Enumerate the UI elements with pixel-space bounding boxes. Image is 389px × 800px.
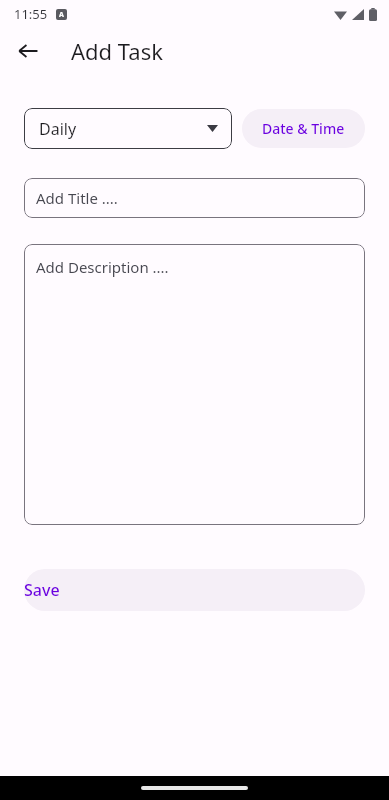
button[interactable]: Daily: [24, 108, 232, 149]
staticText: 11:55: [14, 5, 48, 23]
staticText: Date & Time: [262, 119, 345, 138]
button[interactable]: Add Title ....: [24, 178, 365, 218]
staticText: Add Task: [71, 36, 163, 66]
button[interactable]: Add Description ....: [24, 244, 365, 525]
staticText: A: [59, 10, 64, 20]
button[interactable]: Date & Time: [242, 109, 365, 148]
button[interactable]: Back: [12, 35, 44, 67]
button[interactable]: Save: [24, 569, 365, 611]
staticText: Add Title ....: [36, 188, 118, 208]
staticText: Daily: [39, 118, 77, 140]
staticText: Add Description ....: [36, 257, 169, 277]
staticText: Save: [24, 579, 365, 601]
